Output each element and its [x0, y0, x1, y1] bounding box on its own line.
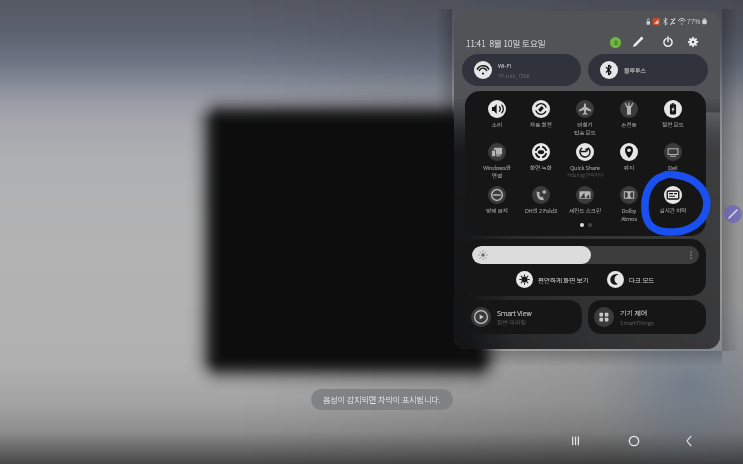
staticText: DH의 2 Fold3: [520, 207, 562, 215]
button[interactable]: 비행기 탑승 모드: [564, 100, 606, 136]
button[interactable]: Profile: [610, 37, 621, 48]
staticText: 방해 금지: [476, 207, 518, 215]
staticText: 음성이 감지되면 자막이 표시됩니다.: [323, 394, 441, 406]
staticText: Wi-Fi: [498, 61, 512, 70]
button[interactable]: Recents: [563, 428, 589, 454]
staticText: DeX: [652, 164, 694, 172]
button[interactable]: 화면 녹화: [520, 143, 562, 172]
staticText: 자동 회전: [520, 121, 562, 129]
button[interactable]: Windows와 연결: [476, 143, 518, 179]
staticText: 실시간 자막: [652, 207, 694, 215]
staticText: 화면 녹화: [520, 164, 562, 172]
staticText: 소리: [476, 121, 518, 129]
staticText: Windows와 연결: [476, 164, 518, 179]
button[interactable]: Dolby Atmos: [608, 186, 650, 222]
staticText: 손전등: [608, 121, 650, 129]
staticText: TP-Link_7D88: [498, 72, 530, 80]
staticText: 겨during 연락처만: [563, 171, 607, 178]
button[interactable]: Wi-Fi: [462, 54, 581, 86]
button[interactable]: 손전등: [608, 100, 650, 129]
button[interactable]: 위치: [608, 143, 650, 172]
staticText: 절전 모드: [652, 121, 694, 129]
staticText: 비행기 탑승 모드: [564, 121, 606, 136]
staticText: Quick Share: [564, 164, 606, 172]
staticText: 위치: [608, 164, 650, 172]
staticText: 다크 모드: [629, 275, 655, 284]
button[interactable]: DeX: [652, 143, 694, 172]
button[interactable]: 소리: [476, 100, 518, 129]
button[interactable]: Edit: [631, 35, 645, 49]
staticText: 세컨드 스크린: [564, 207, 606, 215]
button[interactable]: [472, 246, 699, 264]
staticText: 11:41 8월 10일 토요일: [466, 37, 546, 49]
button[interactable]: 자동 회전: [520, 100, 562, 129]
button[interactable]: 편안하게 화면 보기: [516, 271, 589, 288]
button[interactable]: DH의 2 Fold3: [520, 186, 562, 215]
staticText: Dolby Atmos: [608, 207, 650, 222]
button[interactable]: 블루투스: [588, 54, 708, 86]
staticText: SmartThings: [620, 318, 654, 327]
button[interactable]: Quick Share: [564, 143, 606, 172]
button[interactable]: 세컨드 스크린: [564, 186, 606, 215]
button[interactable]: 실시간 자막: [652, 186, 694, 215]
button[interactable]: 절전 모드: [652, 100, 694, 129]
button[interactable]: Settings: [686, 35, 700, 49]
button[interactable]: Power: [661, 35, 675, 49]
staticText: 블루투스: [624, 66, 647, 75]
staticText: 기기 제어: [620, 308, 648, 318]
staticText: 화면 미러링: [497, 318, 526, 327]
button[interactable]: 다크 모드: [607, 271, 655, 288]
staticText: 77%: [687, 16, 701, 26]
button[interactable]: 방해 금지: [476, 186, 518, 215]
button[interactable]: 기기 제어: [588, 300, 706, 334]
button[interactable]: 음성이 감지되면 자막이 표시됩니다.: [311, 389, 453, 410]
button[interactable]: Smart View: [465, 300, 582, 334]
staticText: Smart View: [497, 308, 532, 318]
button[interactable]: Home: [621, 428, 647, 454]
staticText: 편안하게 화면 보기: [538, 275, 589, 284]
other: Status icons: [644, 15, 706, 27]
button[interactable]: Back: [676, 428, 702, 454]
